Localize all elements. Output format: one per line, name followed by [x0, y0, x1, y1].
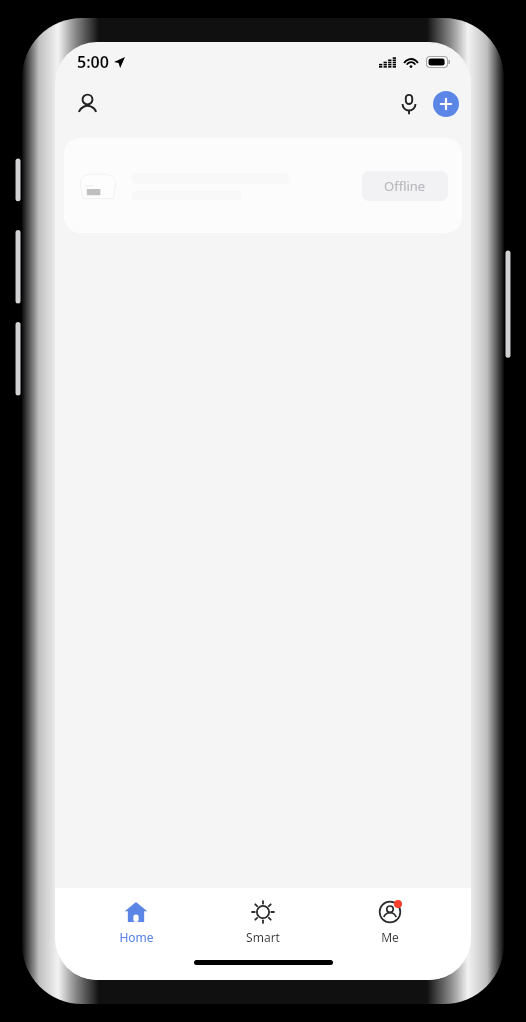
staticText: Offline — [384, 177, 426, 195]
button[interactable]: Me — [344, 888, 436, 956]
button[interactable]: Add device — [433, 91, 459, 117]
button[interactable]: Home — [90, 888, 182, 956]
staticText: Home — [119, 929, 154, 945]
button[interactable]: Smart — [217, 888, 309, 956]
button[interactable]: Voice command — [389, 84, 429, 124]
staticText: Smart — [246, 929, 280, 945]
staticText: Me — [381, 929, 399, 945]
button[interactable]: Offline — [64, 138, 462, 233]
staticText: 5:00 — [77, 51, 109, 73]
button[interactable]: Profile — [67, 84, 107, 124]
button[interactable]: Offline — [362, 171, 448, 201]
